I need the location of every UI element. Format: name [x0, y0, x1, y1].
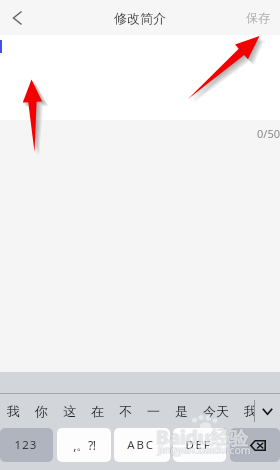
staticText: Baidu经验	[156, 425, 249, 451]
button[interactable]: 一	[147, 394, 160, 428]
button[interactable]: 我	[7, 394, 20, 428]
button[interactable]: ,。?!	[57, 428, 111, 462]
staticText: 是	[175, 403, 188, 419]
staticText: Jingyan.baidu.com	[157, 443, 250, 457]
staticText: 你	[35, 403, 48, 419]
staticText: Jingyan.baidu.com	[158, 443, 251, 457]
staticText: 这	[63, 403, 76, 419]
staticText: 我	[244, 403, 257, 419]
staticText: 保存	[246, 10, 270, 25]
staticText: 一	[147, 403, 160, 419]
staticText: Baidu经验	[156, 424, 249, 450]
staticText: 0/50	[257, 126, 280, 141]
staticText: DEF	[185, 437, 212, 453]
button[interactable]: Back	[0, 0, 35, 35]
staticText: 今天	[203, 403, 229, 419]
staticText: 修改简介	[114, 10, 166, 26]
button[interactable]: 我	[244, 394, 257, 428]
staticText: Jingyan.baidu.com	[158, 442, 251, 456]
button[interactable]: Backspace	[230, 428, 280, 462]
staticText: Jingyan.baidu.com	[159, 443, 252, 457]
staticText: Jingyan.baidu.com	[158, 443, 251, 457]
staticText: Baidu经验	[157, 425, 250, 451]
button[interactable]: 今天	[203, 394, 229, 428]
button[interactable]: 是	[175, 394, 188, 428]
staticText: 123	[14, 437, 38, 453]
button[interactable]: ABC	[114, 428, 170, 462]
button[interactable]: 在	[91, 394, 104, 428]
staticText: ABC	[127, 437, 155, 453]
button[interactable]: 这	[63, 394, 76, 428]
staticText: ,。?!	[73, 437, 96, 453]
button[interactable]: DEF	[173, 428, 226, 462]
button[interactable]: 123	[0, 428, 53, 462]
button[interactable]: 你	[35, 394, 48, 428]
button[interactable]: More candidates	[255, 394, 280, 428]
staticText: 在	[91, 403, 104, 419]
staticText: Baidu经验	[156, 425, 249, 451]
staticText: Baidu经验	[155, 425, 248, 451]
staticText: 我	[7, 403, 20, 419]
button[interactable]: 不	[119, 394, 132, 428]
staticText: 不	[119, 403, 132, 419]
button[interactable]: 保存	[236, 4, 280, 31]
